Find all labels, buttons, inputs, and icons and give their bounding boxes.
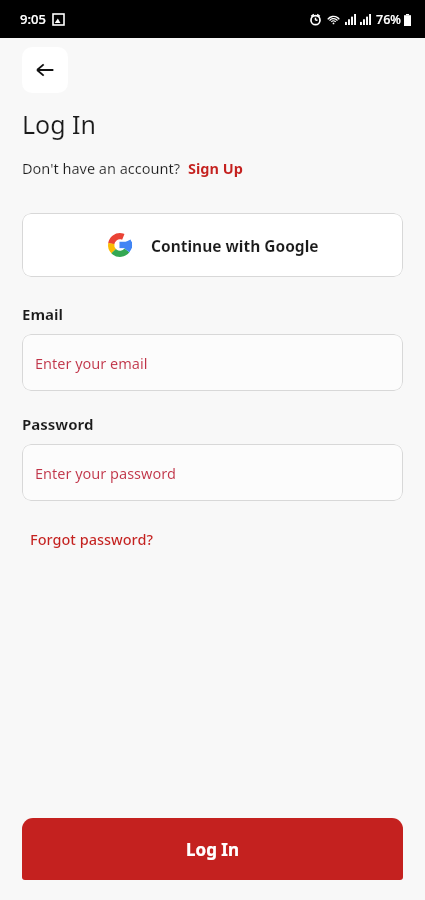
button[interactable]: Log In [22,818,403,880]
staticText: Enter your email [35,353,148,373]
button[interactable]: Forgot password? [30,529,153,549]
staticText: Continue with Google [151,235,319,256]
staticText: Email [22,304,63,324]
button[interactable]: Back [22,47,68,93]
staticText: Log In [22,107,97,141]
staticText: Password [22,414,94,434]
staticText: Log In [186,838,239,861]
staticText: 9:05 [20,10,46,28]
button[interactable]: Sign Up [188,158,243,178]
staticText: 76% [376,11,401,28]
staticText: Enter your password [35,463,176,483]
staticText: Don't have an account? [22,158,188,178]
staticText: Sign Up [188,158,243,178]
button[interactable]: Enter your password [22,444,403,501]
button[interactable]: Continue with Google [22,213,403,277]
button[interactable]: Enter your email [22,334,403,391]
staticText: Forgot password? [30,529,153,549]
